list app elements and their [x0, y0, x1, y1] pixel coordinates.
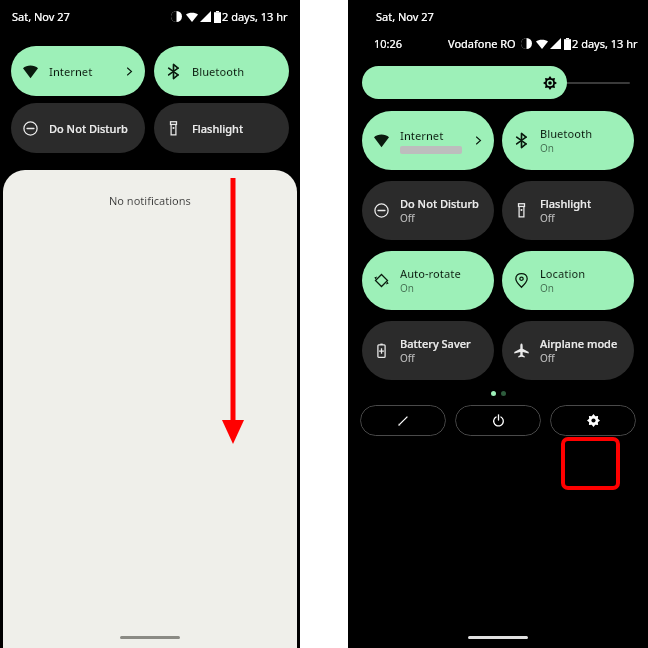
staticText: Sat, Nov 27 [376, 9, 434, 24]
button[interactable]: Bluetooth [154, 46, 289, 96]
button[interactable]: Internet [11, 46, 145, 96]
staticText: Off [540, 351, 555, 365]
button[interactable]: Battery Saver [362, 321, 494, 380]
staticText: 2 days, 13 hr [572, 36, 638, 51]
button[interactable]: Bluetooth [502, 111, 634, 170]
button[interactable]: Power [455, 405, 541, 436]
button[interactable]: Airplane mode [502, 321, 634, 380]
staticText: Off [400, 351, 415, 365]
staticText: On [540, 141, 554, 155]
staticText: Bluetooth [192, 64, 245, 79]
staticText: Off [540, 211, 555, 225]
staticText: Vodafone RO [448, 36, 516, 51]
staticText: Flashlight [540, 196, 592, 211]
staticText: 2 days, 13 hr [222, 9, 288, 24]
button[interactable]: Do Not Disturb [362, 181, 494, 240]
staticText: On [400, 281, 414, 295]
staticText: Off [400, 211, 415, 225]
staticText: Sat, Nov 27 [12, 9, 70, 24]
staticText: No notifications [109, 193, 191, 208]
staticText: Bluetooth [540, 126, 593, 141]
staticText: Do Not Disturb [49, 121, 128, 136]
button[interactable]: Auto-rotate [362, 251, 494, 310]
button[interactable]: Location [502, 251, 634, 310]
staticText: Internet [400, 128, 444, 143]
button[interactable]: Flashlight [154, 103, 289, 153]
button[interactable]: Flashlight [502, 181, 634, 240]
button[interactable]: Do Not Disturb [11, 103, 145, 153]
button[interactable]: Settings [550, 405, 636, 436]
staticText: Location [540, 266, 586, 281]
staticText: Airplane mode [540, 336, 618, 351]
staticText: Battery Saver [400, 336, 471, 351]
staticText: 10:26 [374, 36, 403, 51]
button[interactable]: Brightness [362, 66, 567, 99]
staticText: Internet [49, 64, 93, 79]
staticText: On [540, 281, 554, 295]
staticText: Auto-rotate [400, 266, 461, 281]
button[interactable]: Edit [360, 405, 446, 436]
button[interactable]: Internet [362, 111, 494, 170]
staticText: Flashlight [192, 121, 244, 136]
staticText: Do Not Disturb [400, 196, 479, 211]
